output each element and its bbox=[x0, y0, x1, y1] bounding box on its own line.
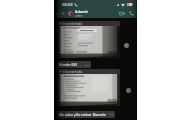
staticText: 08:52 bbox=[62, 2, 73, 8]
staticText: online bbox=[75, 14, 83, 18]
button[interactable]: Scroll down bbox=[126, 88, 131, 93]
staticText: Encaminhada bbox=[63, 22, 83, 26]
staticText: 08:5 bbox=[109, 113, 114, 116]
button[interactable]: Video call bbox=[117, 11, 127, 16]
staticText: Adamir bbox=[75, 9, 89, 14]
button[interactable]: Mandar 600 bbox=[57, 61, 91, 68]
button[interactable]: Back bbox=[54, 12, 66, 16]
button[interactable]: Adamir bbox=[75, 9, 117, 18]
staticText: 08:5 bbox=[85, 64, 90, 67]
button[interactable]: Voice call bbox=[127, 11, 137, 16]
button[interactable]: Scroll to bottom bbox=[124, 43, 129, 48]
staticText: Me aviso p/lo estiver liberado bbox=[59, 112, 106, 117]
staticText: Mandar 600 bbox=[59, 63, 78, 67]
button[interactable]: Encaminhada bbox=[57, 69, 120, 106]
button[interactable]: Me aviso p/lo estiver liberado bbox=[57, 111, 115, 118]
staticText: 65 bbox=[61, 12, 65, 16]
button[interactable]: Profile photo bbox=[68, 11, 73, 16]
staticText: Encaminhada bbox=[63, 70, 83, 74]
button[interactable]: Encaminhada bbox=[57, 21, 120, 58]
